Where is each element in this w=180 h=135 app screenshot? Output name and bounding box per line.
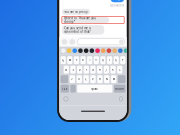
staticText: Can you send me a screenshot of that? [64,26,90,33]
staticText: B [99,77,101,81]
staticText: C [85,77,87,81]
staticText: F [86,68,87,71]
staticText: V [92,77,94,81]
staticText: K [112,68,114,71]
staticText: Z [71,77,73,81]
staticText: 123 [62,87,68,90]
staticText: M [113,77,115,81]
staticText: S [72,68,73,71]
staticText: A [65,68,67,71]
staticText: G [92,68,94,71]
staticText: Delivered [110,4,124,7]
staticText: H [99,68,101,71]
staticText: L [119,68,120,71]
staticText: D [79,68,81,71]
staticText: You are so pretty [64,10,87,13]
staticText: N [106,77,108,81]
staticText: return [115,87,124,90]
staticText: E [76,58,77,62]
staticText: T [89,58,90,62]
staticText: I [109,58,110,62]
staticText: Hey! [113,0,121,1]
staticText: Edited to “How are you doing?” [64,16,96,24]
staticText: R [82,58,84,62]
staticText: P [122,58,124,62]
staticText: Y [95,58,97,62]
staticText: space [91,87,98,90]
staticText: X [78,77,80,81]
staticText: U [102,58,104,62]
staticText: Q [62,58,64,62]
staticText: O [115,58,117,62]
staticText: W [69,58,71,62]
staticText: J [106,68,107,71]
